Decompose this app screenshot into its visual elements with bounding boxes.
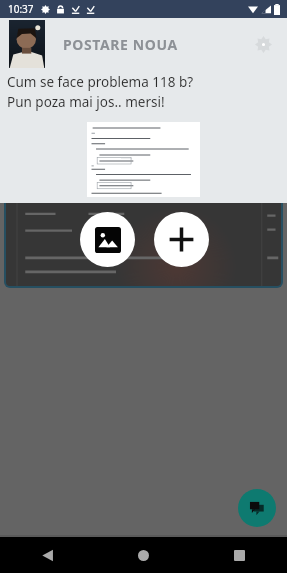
- button[interactable]: Back: [0, 537, 95, 573]
- staticText: Cum se face problema 118 b?: [7, 73, 194, 91]
- button[interactable]: [9, 20, 45, 68]
- staticText: Cum se face problema 11: [38, 100, 181, 116]
- staticText: Comentarii: [38, 22, 111, 40]
- staticText: 10:37: [8, 2, 34, 16]
- button[interactable]: Settings: [243, 24, 283, 64]
- button[interactable]: Recent apps: [191, 537, 287, 573]
- button[interactable]: Home: [95, 537, 191, 573]
- staticText: Marc Bogdan Gruita: [38, 62, 158, 78]
- button[interactable]: [87, 122, 200, 197]
- button[interactable]: Add photo: [80, 212, 135, 267]
- staticText: POSTARE NOUA: [63, 35, 178, 54]
- button[interactable]: Add: [154, 212, 209, 267]
- staticText: Pun poza mai jos.. mersi!: [7, 93, 165, 111]
- button[interactable]: Messages: [238, 489, 276, 527]
